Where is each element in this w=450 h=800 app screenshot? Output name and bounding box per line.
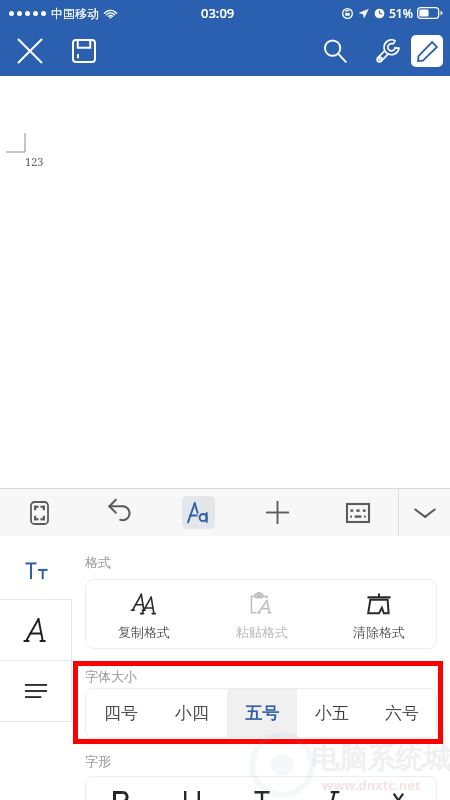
button[interactable]: 六号 bbox=[367, 688, 437, 738]
staticText: 粘贴格式 bbox=[236, 624, 288, 640]
button[interactable]: Text format bbox=[0, 536, 72, 599]
button[interactable]: 小四 bbox=[156, 688, 227, 738]
staticText: 格式 bbox=[85, 554, 111, 570]
button[interactable]: Collapse bbox=[399, 489, 450, 536]
button[interactable]: Select bbox=[0, 489, 79, 536]
staticText: 中国移动 bbox=[51, 6, 99, 21]
button[interactable]: 清除格式 bbox=[320, 581, 437, 649]
staticText: www.dnxtc.net bbox=[322, 776, 421, 794]
button[interactable]: Paragraph bbox=[0, 661, 72, 721]
button[interactable]: Save bbox=[62, 29, 106, 73]
staticText: 六号 bbox=[385, 703, 419, 724]
staticText: 123 bbox=[25, 154, 44, 169]
button[interactable]: Undo bbox=[79, 489, 158, 536]
button[interactable]: Format text bbox=[158, 489, 238, 536]
button[interactable]: 粘贴格式 bbox=[203, 581, 320, 649]
staticText: 四号 bbox=[104, 703, 138, 724]
staticText: 清除格式 bbox=[353, 624, 405, 640]
button[interactable]: 五号 bbox=[227, 688, 297, 738]
button[interactable]: Tools bbox=[365, 29, 409, 73]
staticText: 字形 bbox=[85, 753, 111, 769]
staticText: 复制格式 bbox=[118, 624, 170, 640]
button[interactable] bbox=[85, 776, 156, 800]
button[interactable]: 复制格式 bbox=[85, 581, 203, 649]
button[interactable]: 小五 bbox=[297, 688, 367, 738]
button[interactable]: 四号 bbox=[85, 688, 156, 738]
button[interactable]: Close bbox=[8, 29, 52, 73]
staticText: 电脑系统城 bbox=[311, 741, 450, 776]
button[interactable]: Edit bbox=[411, 35, 443, 67]
staticText: 51% bbox=[389, 5, 413, 21]
button[interactable] bbox=[156, 776, 227, 800]
staticText: 小四 bbox=[175, 703, 209, 724]
staticText: 03:09 bbox=[201, 4, 235, 22]
button[interactable] bbox=[297, 776, 367, 800]
button[interactable]: Insert bbox=[238, 489, 317, 536]
staticText: 字体大小 bbox=[85, 668, 137, 684]
button[interactable] bbox=[227, 776, 297, 800]
button[interactable]: Search bbox=[313, 29, 357, 73]
button[interactable] bbox=[367, 776, 437, 800]
staticText: 五号 bbox=[245, 703, 279, 724]
button[interactable]: Paragraph style bbox=[0, 600, 72, 660]
button[interactable]: Keyboard bbox=[317, 489, 398, 536]
staticText: 小五 bbox=[315, 703, 349, 724]
